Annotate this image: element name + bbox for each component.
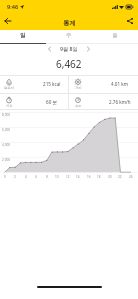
staticText: 215 kcal (43, 81, 61, 87)
button[interactable]: Next day (83, 43, 94, 54)
staticText: 22 (118, 175, 122, 179)
staticText: 월 (112, 32, 118, 39)
staticText: 12 (66, 175, 70, 179)
staticText: 8,000 (2, 113, 11, 117)
button[interactable]: 속도 (68, 93, 138, 111)
staticText: 2,000 (2, 158, 11, 162)
button[interactable]: Share (122, 13, 138, 29)
staticText: 주 (66, 32, 72, 39)
staticText: 8 (46, 175, 48, 179)
staticText: 시간 (6, 104, 13, 108)
staticText: 거리 (75, 86, 82, 90)
staticText: 2.76 km/h (109, 99, 131, 105)
button[interactable]: 거리 (68, 75, 138, 93)
button[interactable]: Previous day (44, 43, 55, 54)
staticText: 2 (14, 175, 16, 179)
staticText: 24 (129, 175, 133, 179)
button[interactable]: 주 (46, 30, 92, 43)
staticText: 14 (76, 175, 80, 179)
button[interactable]: 월 (92, 30, 138, 43)
staticText: 4,000 (2, 143, 11, 147)
staticText: 18 (97, 175, 101, 179)
staticText: 16 (87, 175, 91, 179)
staticText: 20 (108, 175, 112, 179)
staticText: 속도 (75, 104, 82, 108)
staticText: 4.01 km (111, 81, 129, 87)
staticText: 통계 (63, 19, 76, 27)
staticText: 6,462 (56, 57, 82, 71)
staticText: 6 (35, 175, 37, 179)
staticText: 일 (20, 32, 26, 39)
button[interactable]: 일 (0, 30, 46, 43)
staticText: 칼로리 (4, 86, 14, 90)
staticText: 0 (4, 175, 6, 179)
staticText: 10 (55, 175, 59, 179)
staticText: 6,000 (2, 128, 11, 132)
button[interactable]: 시간 (0, 93, 70, 111)
staticText: 60 분 (46, 99, 58, 105)
staticText: 9:46 (7, 3, 19, 11)
button[interactable]: 칼로리 (0, 75, 70, 93)
staticText: 9월 8일 (60, 45, 78, 52)
button[interactable]: Back (0, 13, 16, 29)
staticText: 4 (25, 175, 27, 179)
